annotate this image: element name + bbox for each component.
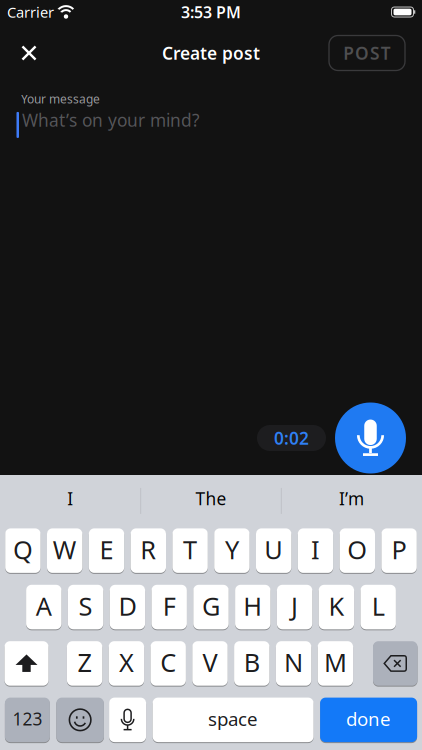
button[interactable]: done [320, 698, 417, 742]
staticText: S [79, 589, 93, 623]
button[interactable] [335, 402, 406, 473]
button[interactable]: The [141, 475, 281, 527]
staticText: I’m [339, 487, 364, 510]
button[interactable]: A [26, 585, 61, 629]
button[interactable]: O [340, 528, 375, 573]
staticText: 0:02 [274, 426, 309, 449]
staticText: Create post [162, 41, 260, 64]
button[interactable] [373, 641, 417, 686]
staticText: O [347, 533, 367, 566]
button[interactable]: N [276, 641, 311, 686]
button[interactable] [4, 641, 48, 686]
button[interactable]: J [277, 585, 312, 629]
staticText: POST [343, 41, 391, 64]
button[interactable]: Z [67, 641, 102, 686]
button[interactable]: K [319, 585, 354, 629]
staticText: P [392, 533, 407, 566]
staticText: F [163, 589, 176, 623]
button[interactable]: Q [5, 528, 41, 573]
staticText: I [67, 487, 73, 510]
button[interactable] [109, 698, 146, 742]
staticText: H [243, 589, 262, 623]
staticText: N [284, 645, 303, 679]
staticText: M [324, 645, 347, 679]
staticText: Z [78, 645, 92, 679]
button[interactable]: W [47, 528, 82, 573]
button[interactable]: P [381, 528, 417, 573]
staticText: A [36, 589, 52, 623]
button[interactable]: B [234, 641, 269, 686]
button[interactable] [56, 698, 104, 742]
staticText: G [202, 589, 220, 623]
staticText: R [140, 533, 156, 566]
button[interactable]: D [110, 585, 145, 629]
button[interactable]: M [318, 641, 353, 686]
button[interactable]: R [131, 528, 166, 573]
button[interactable]: C [150, 641, 186, 686]
staticText: Carrier [7, 2, 54, 22]
staticText: V [202, 645, 217, 679]
staticText: Y [225, 533, 239, 566]
staticText: C [160, 645, 176, 679]
staticText: W [53, 533, 77, 566]
button[interactable]: POST [329, 35, 405, 70]
staticText: E [99, 533, 113, 566]
button[interactable]: I [0, 475, 141, 527]
button[interactable]: T [172, 528, 208, 573]
button[interactable]: What’s on your mind? [0, 107, 422, 133]
staticText: done [346, 706, 391, 731]
button[interactable]: G [193, 585, 229, 629]
staticText: L [372, 589, 385, 623]
staticText: U [264, 533, 283, 566]
staticText: D [118, 589, 136, 623]
button[interactable] [7, 31, 51, 75]
button[interactable]: I [298, 528, 333, 573]
staticText: Your message [21, 91, 100, 107]
staticText: space [208, 706, 258, 731]
button[interactable]: F [151, 585, 187, 629]
staticText: K [328, 589, 344, 623]
staticText: I [311, 533, 320, 566]
button[interactable]: V [192, 641, 228, 686]
staticText: What’s on your mind? [22, 108, 200, 131]
button[interactable]: S [68, 585, 103, 629]
staticText: 3:53 PM [181, 1, 241, 23]
button[interactable]: L [360, 585, 396, 629]
button[interactable]: space [153, 698, 314, 742]
staticText: B [244, 645, 260, 679]
staticText: X [119, 645, 134, 679]
button[interactable]: H [235, 585, 270, 629]
staticText: J [291, 589, 298, 623]
staticText: The [195, 487, 226, 510]
button[interactable]: U [256, 528, 291, 573]
button[interactable]: 123 [5, 698, 50, 742]
button[interactable]: I’m [281, 475, 422, 527]
button[interactable]: E [89, 528, 124, 573]
staticText: Q [13, 533, 33, 566]
button[interactable]: Y [214, 528, 250, 573]
staticText: T [183, 533, 197, 566]
button[interactable]: X [109, 641, 144, 686]
staticText: 123 [12, 707, 42, 730]
